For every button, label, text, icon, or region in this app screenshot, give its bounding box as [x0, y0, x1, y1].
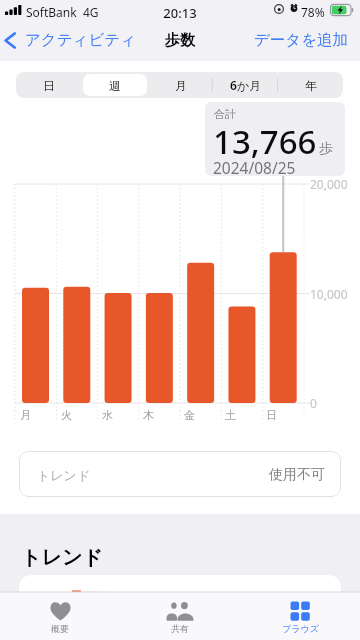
staticText: 20,000 [310, 176, 348, 192]
staticText: 年 [305, 78, 317, 93]
button[interactable]: 日 [16, 72, 82, 98]
staticText: アクティビティ [25, 30, 137, 50]
button[interactable]: データを追加 [254, 28, 349, 52]
staticText: 日 [43, 78, 55, 93]
staticText: 2024/08/25 [213, 157, 296, 176]
button[interactable]: 週 [82, 72, 148, 98]
staticText: 6か月 [230, 77, 262, 93]
staticText: 日 [266, 408, 277, 422]
staticText: 月 [175, 78, 187, 93]
button[interactable]: トレンド [19, 451, 341, 497]
staticText: 概要 [51, 623, 69, 634]
staticText: 水 [102, 408, 113, 422]
staticText: 20:13 [0, 4, 360, 22]
staticText: 歩数 [0, 31, 360, 50]
staticText: SoftBank [26, 4, 77, 20]
staticText: 10,000 [310, 286, 348, 302]
staticText: 土 [225, 408, 236, 422]
staticText: 木 [143, 408, 154, 422]
staticText: 週 [109, 78, 121, 93]
button[interactable]: アクティビティ [4, 28, 137, 52]
staticText: 13,766 [213, 119, 317, 164]
staticText: データを追加 [254, 30, 349, 50]
staticText: 火 [61, 408, 72, 422]
staticText: 合計 [214, 107, 236, 121]
button[interactable]: 月 [148, 72, 213, 98]
staticText: 78% [301, 4, 325, 20]
button[interactable]: 年 [278, 72, 343, 98]
button[interactable]: 概要 [0, 592, 120, 640]
staticText: トレンド [37, 467, 91, 483]
staticText: ブラウズ [282, 623, 319, 634]
staticText: トレンド [21, 545, 103, 570]
staticText: 金 [184, 408, 195, 422]
staticText: 0 [310, 395, 317, 411]
staticText: 4G [83, 4, 99, 20]
staticText: 月 [20, 408, 31, 422]
staticText: 使用不可 [269, 466, 325, 484]
button[interactable]: 共有 [120, 592, 240, 640]
staticText: 歩 [319, 140, 333, 158]
staticText: 共有 [171, 623, 189, 634]
button[interactable]: ブラウズ [240, 592, 360, 640]
button[interactable]: 6か月 [213, 72, 278, 98]
